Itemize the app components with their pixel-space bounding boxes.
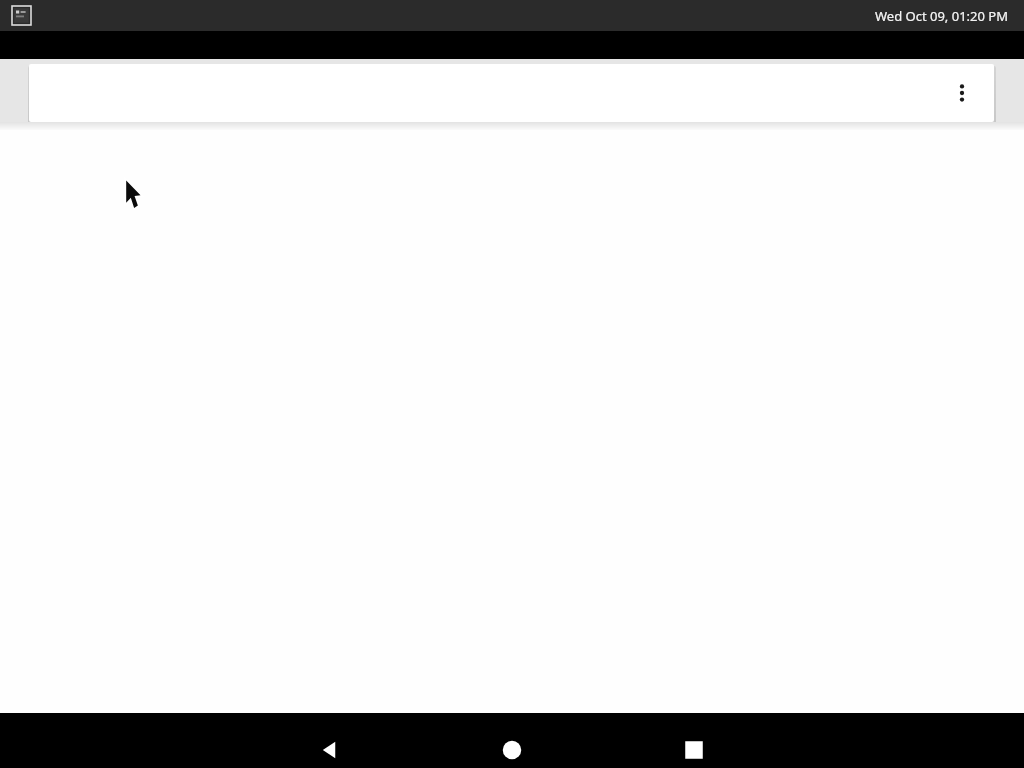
staticText: Wed Oct 09, 01:20 PM [874, 7, 1008, 25]
button[interactable]: Home [488, 726, 536, 768]
button[interactable]: Terminal window [12, 6, 31, 25]
button[interactable]: More options [938, 69, 986, 117]
button[interactable]: Recent apps [670, 726, 718, 768]
button[interactable]: Back [306, 726, 354, 768]
